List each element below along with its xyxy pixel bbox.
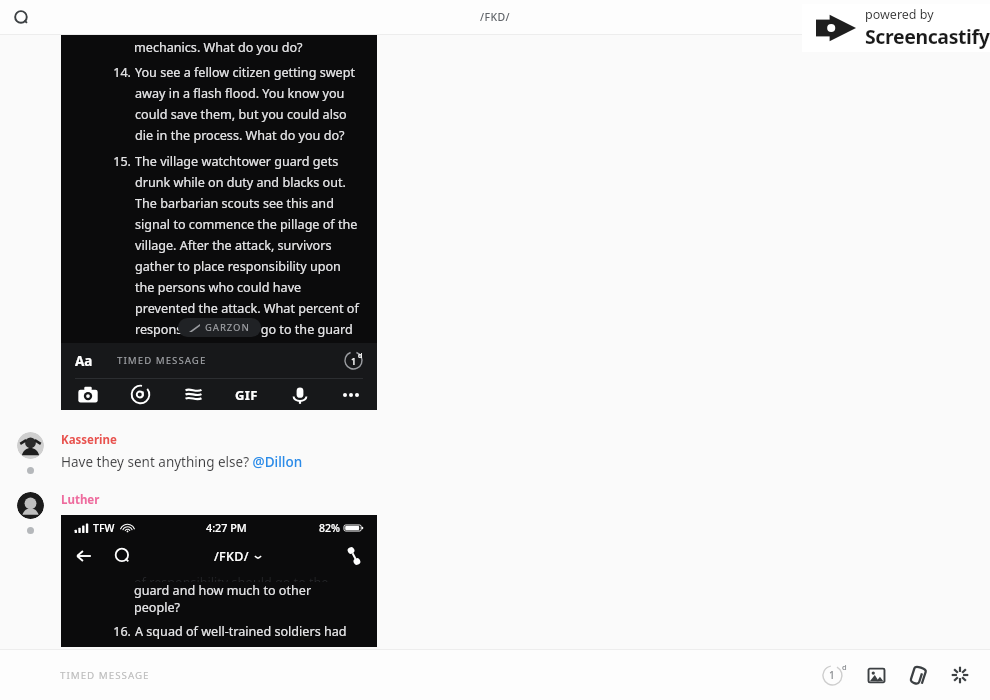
button[interactable]: GIF xyxy=(235,386,258,404)
staticText: TIMED MESSAGE xyxy=(60,669,150,682)
staticText: d xyxy=(842,662,847,672)
staticText: GIF xyxy=(235,386,258,404)
staticText: The village watchtower guard gets drunk … xyxy=(135,153,363,359)
button[interactable]: Call xyxy=(932,4,958,30)
button[interactable]: mechanics. What do you do? xyxy=(61,35,377,410)
staticText: TIMED MESSAGE xyxy=(117,354,207,367)
button[interactable]: Mention xyxy=(130,384,151,405)
button[interactable]: More options xyxy=(341,385,361,405)
staticText: 1 xyxy=(351,355,357,367)
staticText: 16. xyxy=(101,623,131,640)
staticText: Kasserine xyxy=(61,432,117,448)
button[interactable]: Search xyxy=(8,4,35,31)
staticText: 14. xyxy=(101,64,131,81)
button[interactable]: Kasserine xyxy=(61,432,117,448)
button[interactable]: Attach file xyxy=(904,661,932,689)
staticText: TFW xyxy=(93,521,115,535)
staticText: A squad of well-trained soldiers had ver… xyxy=(135,623,363,647)
button[interactable]: Effects xyxy=(946,661,974,689)
button[interactable]: Back xyxy=(75,547,93,565)
staticText: powered by xyxy=(865,6,934,23)
staticText: Screencastify xyxy=(865,23,990,50)
staticText: Aa xyxy=(75,352,93,370)
button[interactable]: /FKD/ xyxy=(480,10,510,24)
staticText: /FKD/ xyxy=(480,10,510,24)
staticText: guard and how much to other xyxy=(134,582,312,599)
button[interactable]: TIMED MESSAGE xyxy=(60,669,818,682)
button[interactable]: Info xyxy=(958,4,984,30)
button[interactable]: Message timer xyxy=(818,661,846,689)
staticText: /FKD/ xyxy=(214,548,249,565)
staticText: d xyxy=(358,351,363,361)
button[interactable]: Luther xyxy=(61,492,100,508)
button[interactable]: TFW xyxy=(61,515,377,647)
staticText: of responsibility should go to the xyxy=(134,574,329,582)
button[interactable]: /FKD/ xyxy=(214,548,263,565)
staticText: GARZON xyxy=(205,321,250,334)
staticText: You see a fellow citizen getting swept a… xyxy=(135,64,363,144)
button[interactable]: Kasserine avatar xyxy=(17,432,44,459)
staticText: 1 xyxy=(829,668,835,682)
button[interactable]: Search xyxy=(114,547,132,565)
staticText: mechanics. What do you do? xyxy=(134,39,303,56)
staticText: Luther xyxy=(61,492,100,508)
button[interactable]: Voice message xyxy=(290,385,310,405)
button[interactable]: Luther avatar xyxy=(17,492,44,519)
staticText: 15. xyxy=(101,153,131,170)
button[interactable]: Timer xyxy=(344,351,363,370)
button[interactable]: Call xyxy=(345,547,363,565)
button[interactable]: Stickers xyxy=(183,384,204,405)
button[interactable]: Have they sent anything else? @Dillon xyxy=(61,453,303,471)
staticText: 4:27 PM xyxy=(206,520,247,535)
button[interactable]: Send photo xyxy=(862,661,890,689)
staticText: people? xyxy=(134,599,181,616)
staticText: 82% xyxy=(319,521,340,535)
button[interactable]: Camera xyxy=(77,384,99,406)
